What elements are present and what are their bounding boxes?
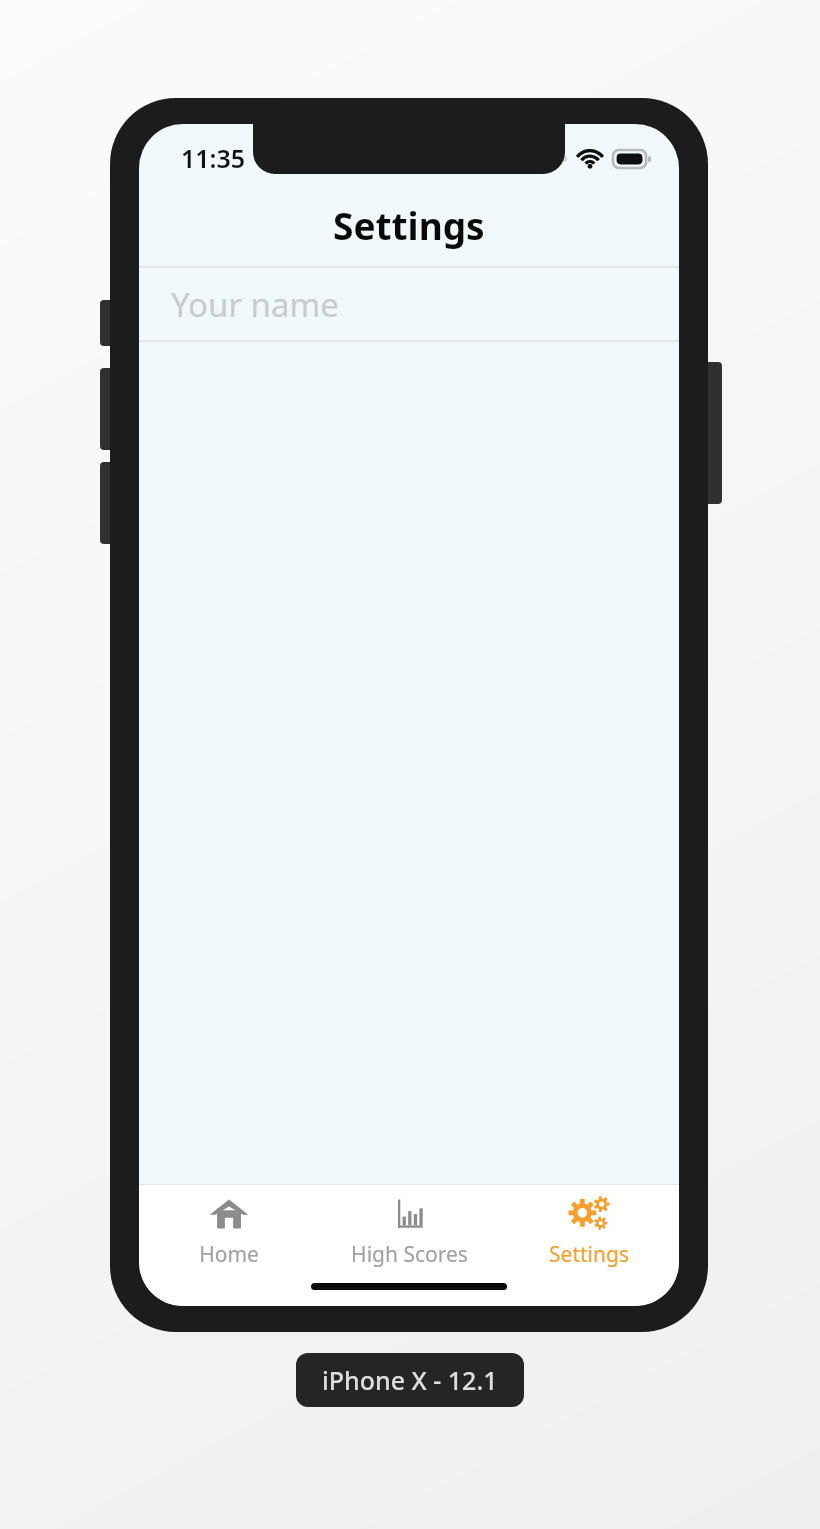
button[interactable]: High Scores (319, 1185, 499, 1273)
staticText: Settings (549, 1240, 629, 1269)
staticText: Settings (333, 200, 485, 250)
button[interactable]: Settings (499, 1185, 679, 1273)
button[interactable]: Your name (139, 268, 679, 340)
staticText: High Scores (351, 1240, 468, 1269)
staticText: Home (199, 1240, 259, 1269)
staticText: Your name (171, 282, 339, 327)
staticText: iPhone X - 12.1 (322, 1363, 498, 1397)
staticText: 11:35 (181, 141, 246, 175)
button[interactable]: Home (139, 1185, 319, 1273)
